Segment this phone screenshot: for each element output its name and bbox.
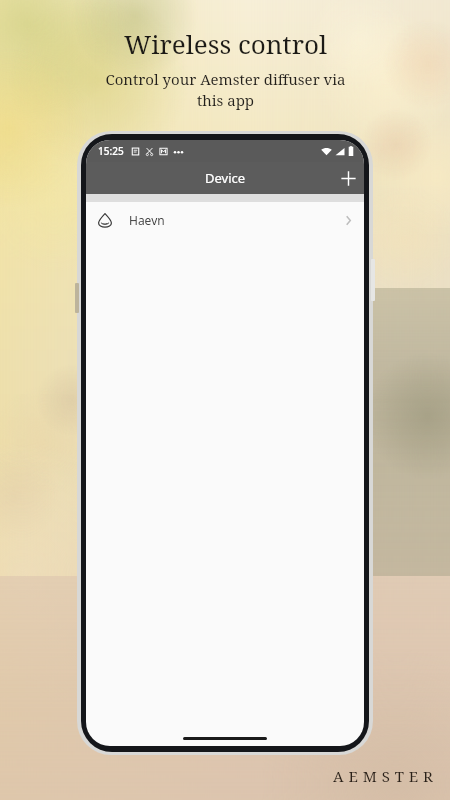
staticText: A E M S T E R xyxy=(333,766,434,786)
staticText: Wireless control xyxy=(124,26,327,61)
button[interactable]: Haevn xyxy=(86,202,364,238)
staticText: Haevn xyxy=(129,212,165,228)
staticText: Control your Aemster diffuser via this a… xyxy=(105,69,346,111)
staticText: Device xyxy=(205,169,246,187)
staticText: 15:25 xyxy=(98,144,124,158)
button[interactable]: Add device xyxy=(332,162,364,194)
